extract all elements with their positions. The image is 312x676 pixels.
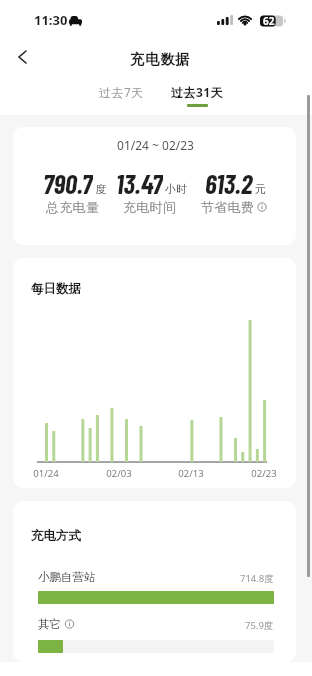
staticText: 过去7天	[99, 84, 144, 100]
staticText: 充电时间	[123, 199, 177, 214]
staticText: 75.9度	[245, 619, 274, 632]
staticText: 13.47	[116, 167, 163, 197]
button[interactable]: 过去31天	[164, 79, 231, 105]
staticText: 62	[263, 14, 275, 28]
staticText: 02/23	[251, 467, 277, 480]
button[interactable]	[8, 42, 38, 72]
staticText: 元	[255, 182, 266, 196]
staticText: 613.2	[205, 167, 253, 197]
staticText: 02/03	[106, 467, 132, 480]
staticText: 02/13	[178, 467, 204, 480]
staticText: 714.8度	[240, 572, 274, 585]
staticText: 度	[95, 182, 106, 196]
staticText: 小鹏自营站	[38, 570, 96, 584]
staticText: 总充电量	[46, 199, 100, 214]
staticText: 充电方式	[31, 528, 81, 544]
staticText: 节省电费	[201, 199, 255, 214]
staticText: 790.7	[43, 167, 93, 197]
staticText: 01/24 ~ 02/23	[117, 137, 194, 153]
staticText: 11:30	[34, 11, 68, 29]
staticText: 过去31天	[171, 84, 224, 100]
staticText: 01/24	[33, 467, 59, 480]
staticText: 充电数据	[130, 51, 191, 69]
button[interactable]: 过去7天	[91, 79, 152, 105]
staticText: 其它	[38, 617, 61, 631]
staticText: 每日数据	[31, 281, 81, 297]
staticText: 小时	[165, 182, 187, 196]
